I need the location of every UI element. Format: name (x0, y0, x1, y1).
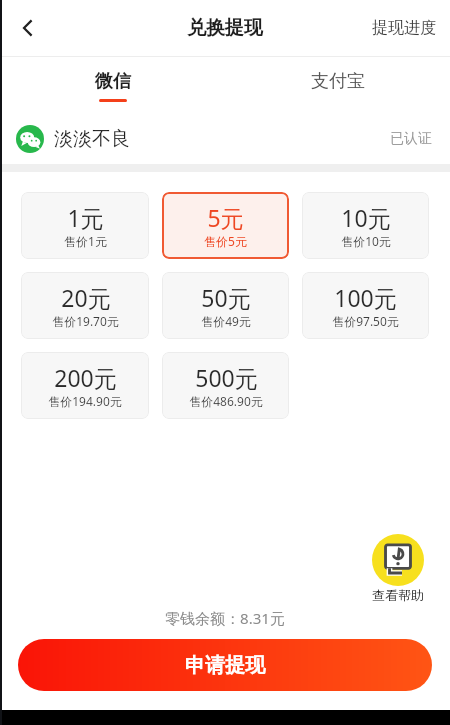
button[interactable]: 500元 (162, 352, 289, 419)
staticText: 零钱余额：8.31元 (165, 608, 285, 628)
staticText: 已认证 (390, 130, 432, 148)
staticText: 10元 (341, 202, 391, 233)
button[interactable]: 10元 (302, 192, 429, 259)
staticText: 50元 (201, 282, 251, 313)
staticText: 售价19.70元 (52, 313, 119, 329)
staticText: 售价1元 (64, 233, 107, 249)
button[interactable]: 淡淡不良 (0, 114, 450, 164)
staticText: 售价5元 (204, 233, 247, 249)
button[interactable]: 20元 (21, 272, 149, 339)
staticText: 500元 (195, 362, 258, 393)
button[interactable]: 50元 (162, 272, 289, 339)
staticText: 售价97.50元 (332, 313, 399, 329)
button[interactable]: Back (6, 6, 50, 50)
staticText: 200元 (54, 362, 117, 393)
staticText: 20元 (61, 282, 111, 313)
button[interactable]: 申请提现 (18, 639, 432, 691)
staticText: 查看帮助 (372, 587, 424, 603)
staticText: 支付宝 (311, 70, 365, 93)
staticText: 100元 (334, 282, 397, 313)
button[interactable]: 5元 (162, 192, 289, 259)
staticText: 兑换提现 (187, 16, 263, 40)
staticText: 5元 (207, 202, 244, 233)
button[interactable]: 微信 (0, 57, 225, 114)
button[interactable]: View help (368, 534, 428, 603)
staticText: 微信 (95, 70, 131, 93)
staticText: 申请提现 (185, 653, 265, 678)
button[interactable]: 支付宝 (225, 57, 450, 114)
staticText: 售价10元 (341, 233, 391, 249)
button[interactable]: 200元 (21, 352, 149, 419)
other: View help (372, 534, 424, 586)
button[interactable]: 提现进度 (366, 8, 442, 48)
staticText: 1元 (67, 202, 104, 233)
button[interactable]: 1元 (21, 192, 149, 259)
staticText: 提现进度 (372, 18, 436, 38)
staticText: 售价49元 (201, 313, 251, 329)
staticText: 售价194.90元 (48, 393, 122, 409)
staticText: 淡淡不良 (54, 127, 130, 151)
button[interactable]: 100元 (302, 272, 429, 339)
staticText: 售价486.90元 (189, 393, 263, 409)
